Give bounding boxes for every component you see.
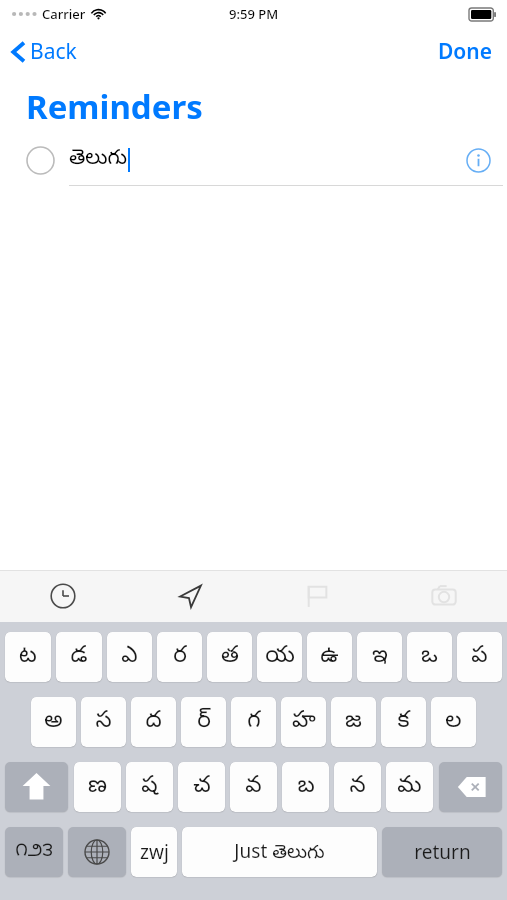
button[interactable]: ణ [74, 762, 121, 812]
button[interactable]: ట [5, 632, 51, 682]
button[interactable]: బ [282, 762, 329, 812]
button[interactable]: చ [178, 762, 225, 812]
button[interactable]: Shift [5, 762, 68, 812]
button[interactable]: స [81, 697, 126, 747]
button[interactable]: Location [126, 570, 253, 622]
button[interactable]: ఎ [107, 632, 152, 682]
staticText: return [414, 839, 471, 865]
button[interactable]: డ [56, 632, 102, 682]
button[interactable]: ఇ [357, 632, 402, 682]
staticText: ౧౨౩ [15, 839, 53, 865]
button[interactable]: అ [31, 697, 76, 747]
staticText: బ [297, 772, 315, 803]
staticText: త [221, 642, 239, 673]
button[interactable]: Back [0, 31, 87, 72]
staticText: య [265, 642, 295, 673]
button[interactable]: zwj [131, 827, 177, 877]
staticText: ఇ [372, 642, 388, 673]
staticText: Carrier [42, 5, 86, 23]
staticText: జ [345, 707, 362, 738]
staticText: న [349, 772, 366, 803]
staticText: గ [247, 707, 261, 738]
button[interactable]: ఒ [407, 632, 452, 682]
staticText: తెలుగు [69, 146, 128, 174]
staticText: zwj [140, 839, 169, 865]
staticText: చ [193, 772, 211, 803]
button[interactable]: క [381, 697, 426, 747]
staticText: Reminders [26, 84, 203, 129]
button[interactable]: Details [450, 140, 507, 181]
staticText: ద [145, 707, 162, 738]
button[interactable]: Camera [380, 570, 507, 622]
staticText: 9:59 PM [229, 5, 279, 23]
staticText: ప [471, 642, 488, 673]
button[interactable]: జ [331, 697, 376, 747]
button[interactable]: Backspace [439, 762, 502, 812]
staticText: అ [44, 707, 63, 738]
button[interactable]: Recent [0, 570, 126, 622]
button[interactable]: హ [281, 697, 326, 747]
button[interactable]: య [257, 632, 302, 682]
staticText: హ [292, 707, 316, 738]
button[interactable]: ల [431, 697, 476, 747]
staticText: ఒ [421, 642, 438, 673]
staticText: ణ [88, 772, 107, 803]
staticText: వ [245, 772, 262, 803]
staticText: ఉ [320, 642, 339, 673]
staticText: Done [438, 37, 493, 66]
button[interactable]: న [334, 762, 381, 812]
button[interactable]: తెలుగు [0, 135, 507, 185]
button[interactable]: ౧౨౩ [5, 827, 63, 877]
button[interactable]: ఉ [307, 632, 352, 682]
button[interactable]: Done [424, 31, 507, 72]
staticText: స [95, 707, 112, 738]
button[interactable]: త [207, 632, 252, 682]
button[interactable]: Flag [253, 570, 380, 622]
button[interactable]: Just తెలుగు [182, 827, 377, 877]
button[interactable]: ప [457, 632, 502, 682]
staticText: క [397, 707, 410, 738]
staticText: ఎ [121, 642, 138, 673]
staticText: ష [141, 772, 158, 803]
staticText: ర్ [197, 707, 211, 738]
staticText: మ [397, 772, 422, 803]
staticText: ల [445, 707, 462, 738]
staticText: Just తెలుగు [234, 838, 325, 867]
button[interactable]: ర్ [181, 697, 226, 747]
button[interactable]: ద [131, 697, 176, 747]
button[interactable]: Change keyboard [68, 827, 126, 877]
button[interactable]: return [382, 827, 502, 877]
staticText: ట [19, 642, 37, 673]
button[interactable]: వ [230, 762, 277, 812]
staticText: Back [30, 37, 77, 66]
button[interactable]: ర [157, 632, 202, 682]
staticText: ర [173, 642, 187, 673]
button[interactable]: ష [126, 762, 173, 812]
staticText: డ [70, 642, 88, 673]
button[interactable]: మ [386, 762, 433, 812]
button[interactable]: గ [231, 697, 276, 747]
